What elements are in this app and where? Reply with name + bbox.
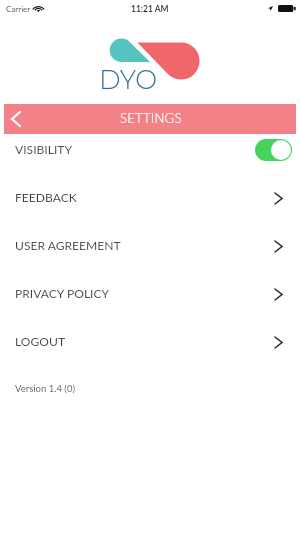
button[interactable]: LOGOUT: [0, 326, 300, 374]
staticText: Version 1.4 (0): [15, 383, 75, 394]
staticText: Carrier: [6, 4, 31, 14]
button[interactable]: USER AGREEMENT: [0, 230, 300, 278]
button[interactable]: PRIVACY POLICY: [0, 278, 300, 326]
staticText: FEEDBACK: [15, 190, 77, 205]
staticText: SETTINGS: [120, 110, 182, 126]
button[interactable]: Visibility toggle: [255, 139, 292, 161]
staticText: 11:21 AM: [131, 4, 169, 14]
staticText: VISIBILITY: [15, 142, 73, 157]
staticText: DYO: [99, 64, 157, 96]
button[interactable]: Back: [4, 104, 32, 134]
button[interactable]: VISIBILITY: [0, 134, 300, 182]
button[interactable]: FEEDBACK: [0, 182, 300, 230]
staticText: USER AGREEMENT: [15, 238, 121, 253]
button[interactable]: Back: [4, 104, 296, 134]
staticText: LOGOUT: [15, 334, 66, 349]
staticText: PRIVACY POLICY: [15, 286, 110, 301]
